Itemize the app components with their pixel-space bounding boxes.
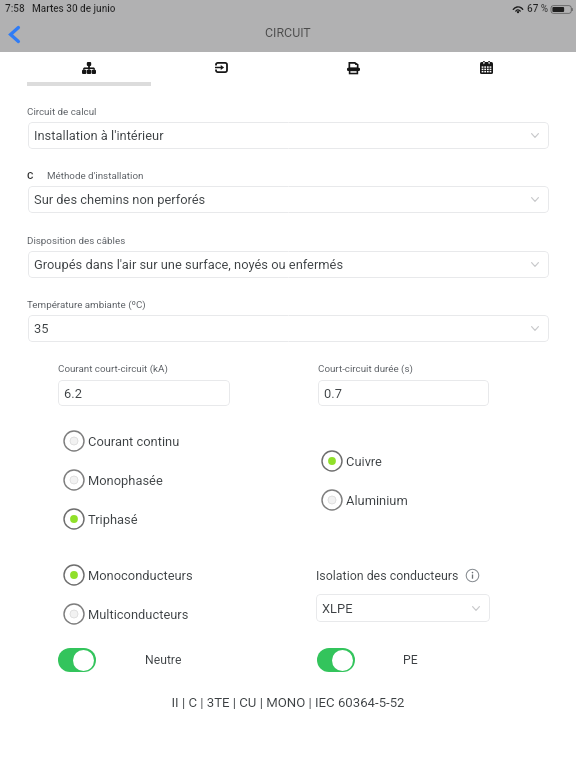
button[interactable]: Back	[0, 17, 29, 51]
button[interactable]: Calendar	[420, 52, 553, 83]
button[interactable]: Monophasée	[63, 467, 163, 493]
staticText: Triphasé	[88, 512, 138, 527]
button[interactable]: Cuivre	[321, 448, 382, 474]
staticText: 0.7	[324, 386, 342, 401]
staticText: Courant court-circuit (kA)	[58, 363, 168, 374]
staticText: Installation à l'intérieur	[34, 128, 164, 143]
staticText: Sur des chemins non perforés	[34, 192, 206, 207]
staticText: Monophasée	[88, 473, 163, 488]
button[interactable]: Diagram	[23, 52, 155, 83]
button[interactable]: Input data	[155, 52, 287, 83]
staticText: 67 %	[527, 3, 549, 15]
staticText: II | C | 3TE | CU | MONO | IEC 60364-5-5…	[0, 695, 576, 710]
button[interactable]: PE toggle	[317, 648, 355, 672]
button[interactable]: XLPE	[316, 594, 490, 622]
staticText: Monoconducteurs	[88, 568, 193, 583]
staticText: PE	[403, 653, 418, 667]
staticText: XLPE	[322, 601, 353, 616]
staticText: 35	[34, 321, 49, 336]
staticText: 7:58	[5, 3, 25, 15]
staticText: Martes 30 de junio	[32, 3, 116, 15]
button[interactable]: Courant continu	[63, 428, 180, 454]
staticText: Méthode d'installation	[47, 170, 144, 181]
staticText: Cuivre	[346, 454, 382, 469]
staticText: CIRCUIT	[265, 25, 311, 40]
button[interactable]: Sur des chemins non perforés	[28, 186, 549, 213]
staticText: Court-circuit durée (s)	[318, 363, 413, 374]
button[interactable]: Print	[287, 52, 420, 83]
button[interactable]: Monoconducteurs	[63, 562, 193, 588]
staticText: C	[27, 170, 34, 181]
staticText: Neutre	[145, 653, 182, 667]
button[interactable]: 35	[28, 315, 549, 342]
button[interactable]: Multiconducteurs	[63, 601, 189, 627]
button[interactable]: Neutre toggle	[58, 648, 96, 672]
button[interactable]: Triphasé	[63, 506, 138, 532]
staticText: Isolation des conducteurs	[316, 568, 459, 583]
button[interactable]: Installation à l'intérieur	[28, 122, 549, 149]
staticText: Température ambiante (ºC)	[27, 299, 146, 310]
staticText: 6.2	[64, 386, 82, 401]
button[interactable]: Aluminium	[321, 487, 408, 513]
staticText: Circuit de calcul	[27, 106, 97, 117]
staticText: Courant continu	[88, 434, 180, 449]
button[interactable]: 0.7	[318, 380, 489, 406]
staticText: Groupés dans l'air sur une surface, noyé…	[34, 257, 344, 272]
staticText: Multiconducteurs	[88, 607, 189, 622]
staticText: Disposition des câbles	[27, 235, 126, 246]
staticText: Aluminium	[346, 493, 408, 508]
button[interactable]: 6.2	[58, 380, 230, 406]
button[interactable]: Groupés dans l'air sur une surface, noyé…	[28, 251, 549, 278]
